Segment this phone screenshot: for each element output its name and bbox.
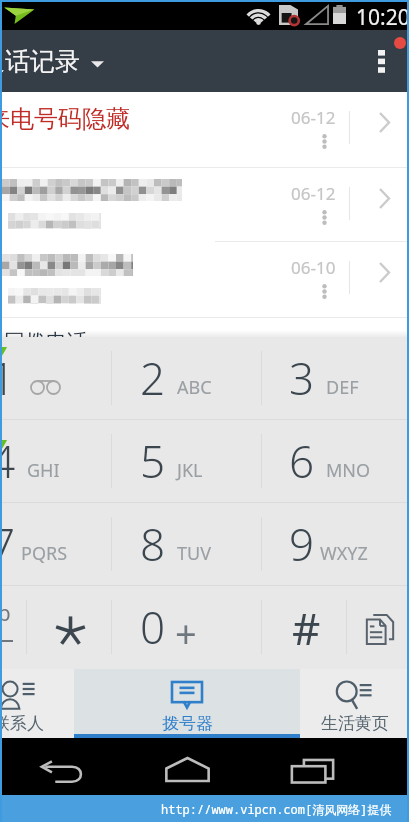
button[interactable]: Home	[145, 740, 229, 794]
staticText: 06-12	[291, 182, 336, 205]
button[interactable]: 来电号码隐藏	[0, 92, 409, 167]
button[interactable]: Row options	[309, 126, 339, 156]
button[interactable]: Recent apps	[272, 740, 356, 794]
staticText: 06-10	[291, 256, 336, 279]
button[interactable]: Open details	[360, 248, 406, 294]
button[interactable]	[27, 586, 112, 668]
button[interactable]: 回拨电话	[0, 318, 409, 357]
staticText: 来电号码隐藏	[0, 104, 130, 134]
staticText: 4	[0, 431, 16, 491]
staticText: PQRS	[21, 541, 68, 566]
staticText: 06-12	[291, 106, 336, 129]
staticText: 7	[0, 514, 16, 574]
button[interactable]: Copy	[347, 586, 409, 668]
button[interactable]: 1	[0, 337, 112, 419]
button[interactable]: abc	[0, 586, 27, 668]
staticText: GHI	[27, 458, 60, 483]
staticText: 3	[289, 348, 315, 408]
button[interactable]: 4	[0, 420, 112, 502]
staticText: WXYZ	[320, 541, 368, 566]
button[interactable]: Row options	[309, 276, 339, 306]
button[interactable]: Open details	[360, 174, 406, 220]
button[interactable]: Row options	[309, 202, 339, 232]
button[interactable]: 2	[112, 337, 262, 419]
button[interactable]: Open details	[360, 98, 406, 144]
button[interactable]: 06-12	[0, 168, 409, 241]
staticText: #	[292, 598, 321, 658]
button[interactable]: 6	[262, 420, 409, 502]
staticText: 0	[140, 597, 166, 657]
button[interactable]: 8	[112, 503, 262, 585]
staticText: 1	[0, 348, 16, 408]
button[interactable]: 0	[112, 586, 262, 668]
staticText: +	[175, 607, 197, 659]
staticText: MNO	[326, 458, 371, 483]
button[interactable]: 生活黄页	[300, 669, 409, 738]
staticText: TUV	[177, 541, 211, 566]
staticText: JKL	[177, 458, 203, 483]
button[interactable]: 拨号器	[74, 669, 300, 738]
staticText: DEF	[326, 375, 359, 400]
staticText: 联系人	[0, 713, 44, 734]
button[interactable]: Back	[20, 740, 104, 794]
staticText: 2	[140, 348, 166, 408]
staticText: abc	[0, 599, 13, 657]
staticText: 9	[289, 514, 315, 574]
staticText: 5	[140, 431, 166, 491]
button[interactable]: 7	[0, 503, 112, 585]
staticText: 8	[140, 514, 166, 574]
button[interactable]: 3	[262, 337, 409, 419]
button[interactable]: 联系人	[0, 669, 74, 738]
staticText: 生活黄页	[321, 713, 389, 734]
staticText: 6	[289, 431, 315, 491]
button[interactable]: 06-10	[0, 242, 409, 317]
staticText: 通话记录	[0, 46, 80, 77]
staticText: 回拨电话	[4, 329, 88, 355]
staticText: http://www.vipcn.com[清风网络]提供	[161, 801, 392, 817]
button[interactable]: #	[262, 586, 347, 668]
button[interactable]: 9	[262, 503, 409, 585]
staticText: 10:20	[356, 3, 409, 32]
button[interactable]: More options	[353, 30, 409, 92]
staticText: 拨号器	[162, 713, 213, 734]
staticText: ABC	[177, 375, 212, 400]
button[interactable]: 5	[112, 420, 262, 502]
button[interactable]: 通话记录	[0, 46, 104, 77]
